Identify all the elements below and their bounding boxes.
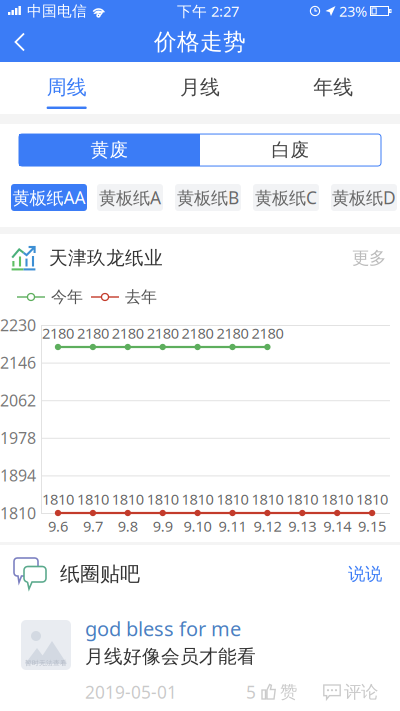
staticText: 1810 xyxy=(77,489,109,509)
staticText: 黄板纸D xyxy=(332,186,396,209)
staticText: 白废 xyxy=(271,138,309,161)
staticText: 1810 xyxy=(147,489,179,509)
staticText: 9.7 xyxy=(83,516,103,536)
staticText: 9.12 xyxy=(253,516,281,536)
staticText: 2180 xyxy=(251,323,283,343)
staticText: 1810 xyxy=(112,489,144,509)
staticText: 月线好像会员才能看 xyxy=(85,645,256,668)
button[interactable]: 更多 xyxy=(347,242,391,274)
button[interactable]: 返回 xyxy=(0,22,40,61)
staticText: 今年 xyxy=(51,287,83,307)
button[interactable]: 黄板纸A xyxy=(97,184,163,211)
button[interactable]: 评论 xyxy=(323,681,378,703)
staticText: 2180 xyxy=(182,323,214,343)
button[interactable]: 周线 xyxy=(0,62,133,114)
staticText: 1810 xyxy=(321,489,353,509)
staticText: 1810 xyxy=(0,502,36,524)
staticText: 更多 xyxy=(352,247,386,269)
staticText: 1810 xyxy=(216,489,248,509)
staticText: 去年 xyxy=(125,287,157,307)
staticText: 9.8 xyxy=(118,516,138,536)
staticText: 赞 xyxy=(280,681,297,703)
button[interactable]: 白废 xyxy=(200,134,381,166)
staticText: god bless for me xyxy=(85,615,241,642)
staticText: 黄板纸C xyxy=(255,186,317,209)
button[interactable]: 黄板纸B xyxy=(175,184,241,211)
staticText: 黄废 xyxy=(90,138,128,161)
staticText: 1810 xyxy=(182,489,214,509)
staticText: 暂时无法查看 xyxy=(25,659,67,667)
staticText: 1894 xyxy=(0,465,36,486)
staticText: 9.14 xyxy=(323,516,351,536)
staticText: 黄板纸AA xyxy=(12,186,85,209)
button[interactable]: 说说 xyxy=(342,557,388,591)
staticText: 2180 xyxy=(42,323,74,343)
staticText: 天津玖龙纸业 xyxy=(49,246,163,269)
button[interactable]: 月线 xyxy=(133,62,267,114)
staticText: 黄板纸B xyxy=(177,186,239,209)
staticText: 9.15 xyxy=(358,516,386,536)
staticText: 2019-05-01 xyxy=(85,680,177,703)
staticText: 周线 xyxy=(47,75,87,100)
staticText: 9.10 xyxy=(184,516,212,536)
staticText: 黄板纸A xyxy=(99,186,161,209)
staticText: 中国电信 xyxy=(27,2,87,20)
staticText: 下午 2:27 xyxy=(177,1,239,21)
staticText: 1810 xyxy=(42,489,74,509)
staticText: 5 xyxy=(246,680,256,703)
staticText: 2062 xyxy=(0,390,36,411)
staticText: 价格走势 xyxy=(154,28,246,56)
staticText: 年线 xyxy=(313,75,353,100)
staticText: 9.6 xyxy=(48,516,68,536)
staticText: 2180 xyxy=(147,323,179,343)
staticText: 9.11 xyxy=(218,516,246,536)
staticText: 2180 xyxy=(77,323,109,343)
staticText: 2180 xyxy=(112,323,144,343)
staticText: 说说 xyxy=(348,563,382,585)
button[interactable]: 黄板纸C xyxy=(253,184,319,211)
staticText: 2230 xyxy=(0,314,36,336)
staticText: 1810 xyxy=(356,489,388,509)
staticText: 1810 xyxy=(251,489,283,509)
staticText: 9.13 xyxy=(288,516,316,536)
button[interactable]: 黄废 xyxy=(19,134,200,166)
button[interactable]: 黄板纸D xyxy=(331,184,397,211)
button[interactable]: 年线 xyxy=(267,62,400,114)
staticText: 9.9 xyxy=(153,516,173,536)
staticText: 1978 xyxy=(0,427,36,448)
button[interactable]: 5 xyxy=(246,680,297,703)
staticText: 纸圈贴吧 xyxy=(60,562,140,586)
staticText: 评论 xyxy=(344,681,378,703)
staticText: 23% xyxy=(339,1,367,21)
button[interactable]: 黄板纸AA xyxy=(11,184,87,211)
staticText: 2180 xyxy=(216,323,248,343)
staticText: 月线 xyxy=(180,75,220,100)
staticText: 1810 xyxy=(286,489,318,509)
staticText: 2146 xyxy=(0,352,36,373)
